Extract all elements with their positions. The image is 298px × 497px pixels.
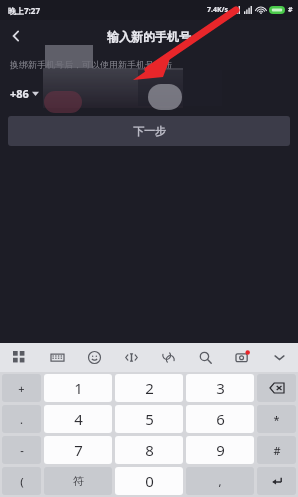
staticText: 1 <box>74 378 83 398</box>
button[interactable]: Camera <box>224 343 261 372</box>
button[interactable]: 8 <box>115 436 183 464</box>
button[interactable]: 2 <box>115 374 183 402</box>
button[interactable]: 4 <box>44 405 112 433</box>
button[interactable]: Text tools <box>113 343 150 372</box>
staticText: + <box>18 381 25 396</box>
button[interactable]: 5 <box>115 405 183 433</box>
staticText: 输入新的手机号 <box>107 29 191 44</box>
button[interactable]: 下一步 <box>8 116 290 146</box>
button[interactable]: * <box>257 405 296 433</box>
staticText: 8 <box>145 440 154 460</box>
button[interactable]: +86 <box>10 86 39 101</box>
staticText: . <box>20 412 23 427</box>
button[interactable]: 3 <box>186 374 254 402</box>
staticText: - <box>20 443 24 458</box>
staticText: 7.4K/s <box>207 5 229 15</box>
staticText: 6 <box>216 409 225 429</box>
button[interactable]: 符 <box>44 467 112 495</box>
staticText: 3 <box>216 378 225 398</box>
button[interactable]: Clipboard <box>150 343 187 372</box>
button[interactable]: Search <box>187 343 224 372</box>
staticText: +86 <box>10 86 29 101</box>
staticText: , <box>218 474 222 489</box>
staticText: 0 <box>145 471 154 491</box>
button[interactable]: 1 <box>44 374 112 402</box>
button[interactable]: Emoji <box>76 343 113 372</box>
button[interactable]: Keyboard layout <box>38 343 76 372</box>
staticText: 2 <box>145 378 154 398</box>
staticText: # <box>288 5 293 15</box>
button[interactable]: 7 <box>44 436 112 464</box>
staticText: * <box>273 412 280 427</box>
button[interactable]: 6 <box>186 405 254 433</box>
button[interactable]: Hide keyboard <box>261 343 298 372</box>
button[interactable]: 9 <box>186 436 254 464</box>
staticText: 符 <box>73 474 84 488</box>
staticText: 9 <box>216 440 225 460</box>
button[interactable]: ( <box>2 467 41 495</box>
staticText: ( <box>20 474 24 489</box>
staticText: 7 <box>74 440 83 460</box>
staticText: 下一步 <box>133 124 166 138</box>
staticText: 换绑新手机号后，可以使用新手机号登陆 <box>10 59 172 70</box>
button[interactable]: # <box>257 436 296 464</box>
button[interactable]: Enter <box>257 467 296 495</box>
button[interactable]: . <box>2 405 41 433</box>
button[interactable]: Backspace <box>257 374 296 402</box>
staticText: 4 <box>74 409 83 429</box>
staticText: 5 <box>145 409 154 429</box>
button[interactable]: Apps <box>0 343 38 372</box>
button[interactable]: + <box>2 374 41 402</box>
staticText: 晚上7:27 <box>8 5 40 16</box>
button[interactable]: 0 <box>115 467 183 495</box>
button[interactable]: Back <box>0 20 32 52</box>
button[interactable]: , <box>186 467 254 495</box>
button[interactable]: - <box>2 436 41 464</box>
staticText: # <box>273 443 281 458</box>
